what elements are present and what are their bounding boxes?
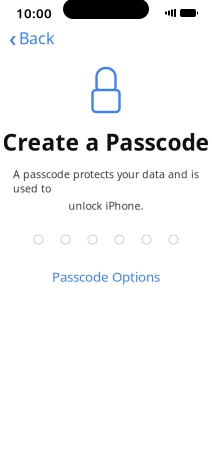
staticText: Back <box>19 27 55 49</box>
staticText: 10:00 <box>16 4 52 22</box>
button[interactable]: ‹ <box>0 20 63 56</box>
staticText: ‹ <box>9 23 16 53</box>
staticText: A passcode protects your data and is use… <box>13 167 199 195</box>
staticText: Create a Passcode <box>2 127 209 157</box>
staticText: Passcode Options <box>52 268 160 285</box>
staticText: unlock iPhone. <box>68 198 143 213</box>
button[interactable]: Passcode Options <box>40 263 172 290</box>
